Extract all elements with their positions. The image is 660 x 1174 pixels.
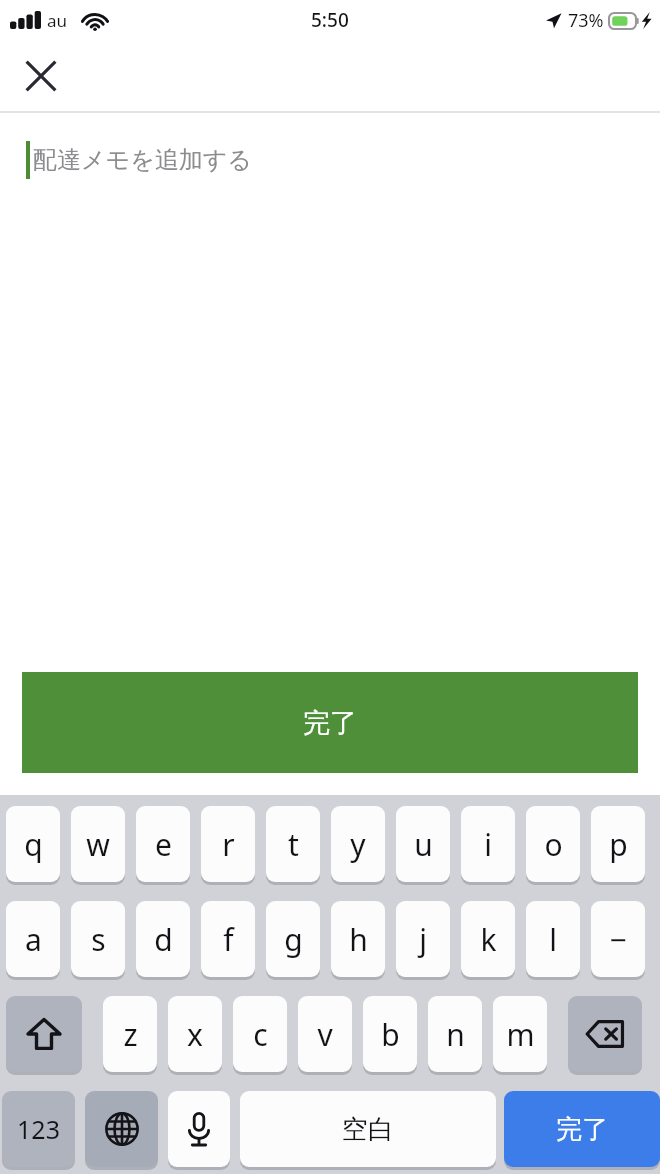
button[interactable]: Change keyboard: [85, 1091, 158, 1170]
staticText: h: [349, 919, 368, 960]
staticText: l: [549, 919, 557, 960]
button[interactable]: h: [331, 901, 385, 980]
staticText: 配達メモを追加する: [33, 145, 252, 175]
staticText: y: [350, 824, 366, 865]
staticText: 73%: [568, 8, 604, 33]
button[interactable]: k: [461, 901, 515, 980]
staticText: w: [86, 824, 110, 865]
button[interactable]: b: [363, 996, 417, 1075]
button[interactable]: j: [396, 901, 450, 980]
button[interactable]: r: [201, 806, 255, 885]
button[interactable]: i: [461, 806, 515, 885]
button[interactable]: 完了: [22, 672, 638, 773]
staticText: u: [414, 824, 433, 865]
staticText: b: [381, 1014, 400, 1055]
button[interactable]: g: [266, 901, 320, 980]
button[interactable]: 123: [2, 1091, 75, 1170]
staticText: 5:50: [311, 7, 349, 33]
button[interactable]: n: [428, 996, 482, 1075]
staticText: r: [222, 824, 235, 865]
staticText: k: [480, 919, 497, 960]
staticText: g: [284, 919, 303, 960]
button[interactable]: v: [298, 996, 352, 1075]
button[interactable]: 完了: [504, 1091, 660, 1170]
staticText: v: [317, 1014, 333, 1055]
button[interactable]: a: [6, 901, 60, 980]
staticText: f: [223, 919, 234, 960]
staticText: a: [25, 919, 42, 960]
button[interactable]: p: [591, 806, 645, 885]
staticText: s: [91, 919, 106, 960]
button[interactable]: l: [526, 901, 580, 980]
staticText: 完了: [556, 1113, 608, 1146]
button[interactable]: x: [168, 996, 222, 1075]
staticText: n: [446, 1014, 465, 1055]
button[interactable]: c: [233, 996, 287, 1075]
staticText: c: [253, 1014, 268, 1055]
button[interactable]: e: [136, 806, 190, 885]
staticText: q: [24, 824, 43, 865]
staticText: j: [419, 919, 427, 960]
button[interactable]: o: [526, 806, 580, 885]
staticText: z: [123, 1014, 138, 1055]
button[interactable]: −: [591, 901, 645, 980]
button[interactable]: Close: [13, 48, 69, 104]
button[interactable]: Backspace: [568, 996, 642, 1075]
staticText: x: [187, 1014, 203, 1055]
button[interactable]: u: [396, 806, 450, 885]
button[interactable]: t: [266, 806, 320, 885]
staticText: m: [506, 1014, 535, 1055]
staticText: 空白: [342, 1113, 394, 1146]
button[interactable]: Shift: [6, 996, 82, 1075]
button[interactable]: y: [331, 806, 385, 885]
staticText: −: [609, 919, 627, 960]
staticText: e: [155, 824, 172, 865]
button[interactable]: w: [71, 806, 125, 885]
button[interactable]: f: [201, 901, 255, 980]
staticText: d: [154, 919, 173, 960]
button[interactable]: m: [493, 996, 547, 1075]
button[interactable]: s: [71, 901, 125, 980]
staticText: o: [544, 824, 563, 865]
button[interactable]: z: [103, 996, 157, 1075]
staticText: au: [47, 9, 68, 32]
staticText: 完了: [303, 706, 357, 740]
button[interactable]: d: [136, 901, 190, 980]
button[interactable]: 空白: [240, 1091, 496, 1170]
button[interactable]: 配達メモを追加する: [0, 113, 660, 672]
staticText: t: [288, 824, 299, 865]
button[interactable]: Dictate: [168, 1091, 230, 1170]
button[interactable]: q: [6, 806, 60, 885]
staticText: 123: [17, 1112, 60, 1146]
staticText: p: [609, 824, 628, 865]
staticText: i: [484, 824, 492, 865]
